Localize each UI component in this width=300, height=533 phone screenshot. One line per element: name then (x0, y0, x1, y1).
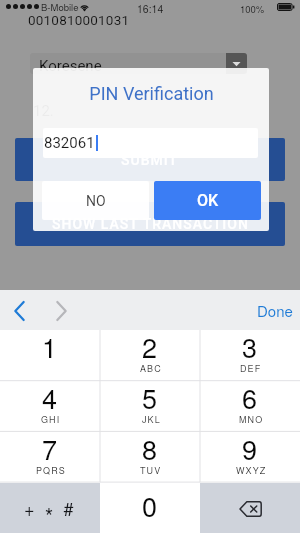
staticText: JKL (142, 413, 161, 426)
staticText: 1 (42, 327, 58, 366)
staticText: WXYZ (236, 464, 267, 477)
button[interactable]: Done (256, 296, 294, 325)
button[interactable]: 9 (200, 432, 300, 483)
staticText: ABC (140, 362, 162, 375)
button[interactable]: Backspace (200, 483, 300, 533)
button[interactable]: Symbols (0, 483, 100, 533)
button[interactable]: 8 (100, 432, 200, 483)
staticText: 9 (242, 429, 258, 468)
button[interactable]: 4 (0, 381, 100, 432)
staticText: Koresene (39, 57, 102, 74)
staticText: 832061 (44, 134, 95, 152)
button[interactable]: OK (154, 181, 261, 220)
button[interactable]: 0 (100, 483, 200, 533)
button[interactable]: 3 (200, 330, 300, 381)
staticText: 7 (42, 429, 58, 468)
staticText: PIN Verification (89, 83, 214, 104)
staticText: 0 (142, 486, 158, 525)
button[interactable]: 2 (100, 330, 200, 381)
button[interactable]: Previous field (6, 297, 33, 324)
button[interactable]: 5 (100, 381, 200, 432)
staticText: 16:14 (137, 1, 164, 16)
button[interactable]: 832061 (43, 128, 258, 158)
staticText: SUBMIT (121, 152, 179, 168)
staticText: OK (197, 191, 219, 210)
staticText: 4 (42, 378, 58, 417)
staticText: 3 (242, 327, 258, 366)
staticText: NO (86, 193, 106, 209)
staticText: + ∗ # (24, 495, 77, 521)
staticText: 100% (240, 2, 265, 16)
staticText: 0010810001031 (28, 12, 130, 28)
button[interactable]: Next field (48, 297, 75, 324)
staticText: MNO (239, 413, 264, 426)
staticText: B-Mobile (41, 0, 79, 14)
staticText: SHOW LAST TRANSACTION (52, 216, 249, 232)
staticText: 6 (242, 378, 258, 417)
staticText: 5 (142, 378, 158, 417)
staticText: 8 (142, 429, 158, 468)
staticText: Done (257, 300, 293, 321)
staticText: 2 (142, 327, 158, 366)
button[interactable]: SHOW LAST TRANSACTION (15, 202, 285, 246)
button[interactable]: 1 (0, 330, 100, 381)
button[interactable]: NO (42, 181, 149, 220)
button[interactable]: SUBMIT (15, 138, 285, 181)
staticText: DEF (240, 362, 262, 375)
staticText: GHI (41, 413, 61, 426)
button[interactable]: Koresene (30, 53, 247, 74)
button[interactable]: 6 (200, 381, 300, 432)
staticText: TUV (140, 464, 162, 477)
button[interactable]: 7 (0, 432, 100, 483)
staticText: PQRS (36, 464, 66, 477)
